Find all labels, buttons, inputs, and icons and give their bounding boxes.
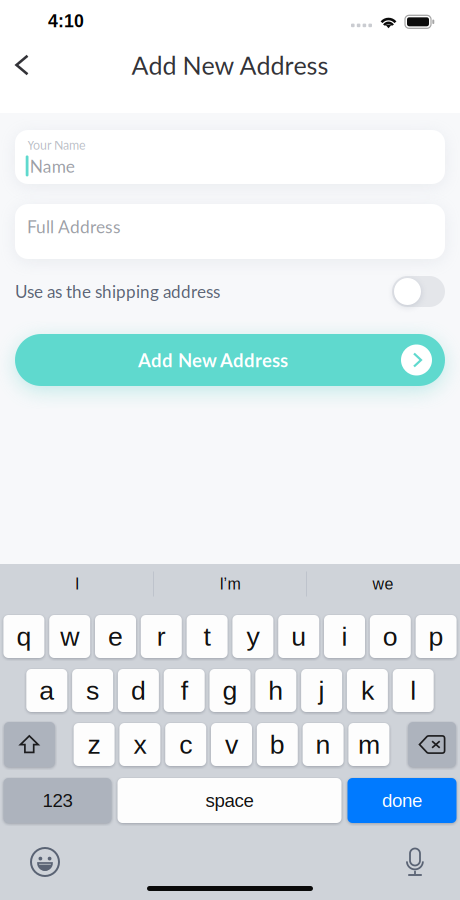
button[interactable]: r <box>141 615 182 658</box>
button[interactable]: Use as the shipping address <box>392 276 445 307</box>
staticText: done <box>382 790 422 811</box>
button[interactable]: u <box>278 615 319 658</box>
staticText: d <box>131 676 146 705</box>
staticText: y <box>246 622 259 651</box>
button[interactable]: s <box>72 669 113 712</box>
button[interactable]: Add New Address <box>15 334 445 386</box>
button[interactable]: g <box>209 669 250 712</box>
staticText: a <box>39 676 54 705</box>
staticText: Add New Address <box>131 50 328 80</box>
button[interactable]: j <box>301 669 342 712</box>
staticText: g <box>222 676 237 705</box>
staticText: s <box>86 676 99 705</box>
staticText: p <box>429 622 444 651</box>
button[interactable]: Shift <box>4 722 55 767</box>
button[interactable]: e <box>95 615 136 658</box>
staticText: l <box>410 676 416 705</box>
button[interactable]: I’m <box>154 565 306 603</box>
staticText: Add New Address <box>138 349 288 371</box>
staticText: v <box>225 730 238 759</box>
staticText: Use as the shipping address <box>15 281 220 302</box>
staticText: r <box>157 622 166 651</box>
staticText: x <box>133 730 146 759</box>
staticText: h <box>268 676 283 705</box>
staticText: Name <box>30 155 75 176</box>
button[interactable]: f <box>164 669 205 712</box>
button[interactable]: v <box>211 723 252 766</box>
button[interactable]: t <box>187 615 228 658</box>
staticText: Your Name <box>27 138 86 152</box>
staticText: I’m <box>219 575 240 593</box>
button[interactable]: k <box>347 669 388 712</box>
button[interactable]: a <box>26 669 67 712</box>
staticText: n <box>316 730 331 759</box>
button[interactable]: space <box>117 778 341 823</box>
staticText: Full Address <box>27 216 121 237</box>
button[interactable]: m <box>348 723 389 766</box>
button[interactable]: p <box>416 615 457 658</box>
button[interactable]: x <box>119 723 160 766</box>
staticText: j <box>319 676 325 705</box>
staticText: 123 <box>42 790 72 811</box>
staticText: w <box>60 622 79 651</box>
button[interactable]: Back <box>0 43 44 87</box>
button[interactable]: d <box>118 669 159 712</box>
button[interactable]: o <box>370 615 411 658</box>
button[interactable]: done <box>347 778 456 823</box>
button[interactable]: we <box>307 565 459 603</box>
staticText: o <box>383 622 398 651</box>
button[interactable]: Delete <box>408 722 456 767</box>
staticText: b <box>270 730 285 759</box>
staticText: e <box>108 622 123 651</box>
staticText: I <box>75 575 79 593</box>
staticText: c <box>179 730 192 759</box>
staticText: we <box>372 575 393 593</box>
button[interactable]: n <box>303 723 344 766</box>
staticText: t <box>204 622 211 651</box>
button[interactable]: y <box>232 615 273 658</box>
staticText: 4:10 <box>48 11 84 31</box>
button[interactable]: c <box>165 723 206 766</box>
button[interactable]: w <box>49 615 90 658</box>
button[interactable]: Dictation <box>393 842 437 882</box>
button[interactable]: q <box>3 615 44 658</box>
button[interactable]: i <box>324 615 365 658</box>
staticText: f <box>181 676 188 705</box>
staticText: m <box>358 730 380 759</box>
staticText: space <box>205 790 253 811</box>
staticText: u <box>291 622 306 651</box>
staticText: z <box>88 730 101 759</box>
button[interactable]: l <box>393 669 434 712</box>
staticText: i <box>341 622 347 651</box>
button[interactable]: b <box>257 723 298 766</box>
button[interactable]: z <box>74 723 115 766</box>
button[interactable]: h <box>255 669 296 712</box>
button[interactable]: Emoji <box>23 842 67 882</box>
button[interactable]: 123 <box>3 778 111 823</box>
staticText: q <box>16 622 31 651</box>
button[interactable]: I <box>1 565 153 603</box>
staticText: k <box>361 676 374 705</box>
